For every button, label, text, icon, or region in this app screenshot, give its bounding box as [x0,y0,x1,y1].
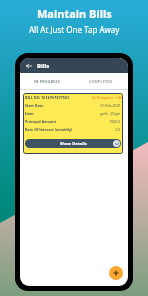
staticText: 1000.0 [109,119,121,124]
staticText: Bills [37,62,50,70]
button[interactable]: COMPLETED [74,73,128,89]
staticText: Start Date [25,103,44,108]
staticText: Maintain Bills [37,6,112,21]
staticText: IN PROGRESS [34,79,60,84]
button[interactable]: Add bill [109,266,123,280]
button[interactable]: Show Details [25,139,121,148]
button[interactable]: BILL NO. 1614/9/1877503 [23,93,123,154]
button[interactable]: IN PROGRESS [20,73,74,89]
staticText: All At Just One Tap Away [29,24,120,35]
staticText: Rate Of Interest (monthly) [25,127,73,132]
staticText: 2.0 [115,127,121,132]
staticText: Item [25,111,34,116]
staticText: gold - 20gm [100,111,121,116]
staticText: In Progress [92,95,114,100]
staticText: 31-Feb-2021 [100,103,121,108]
staticText: Show Details [60,141,87,147]
staticText: COMPLETED [89,79,113,84]
button[interactable]: Back [20,58,37,73]
staticText: Principal Amount [25,119,57,124]
staticText: BILL NO. 1614/9/1877503 [25,95,69,100]
